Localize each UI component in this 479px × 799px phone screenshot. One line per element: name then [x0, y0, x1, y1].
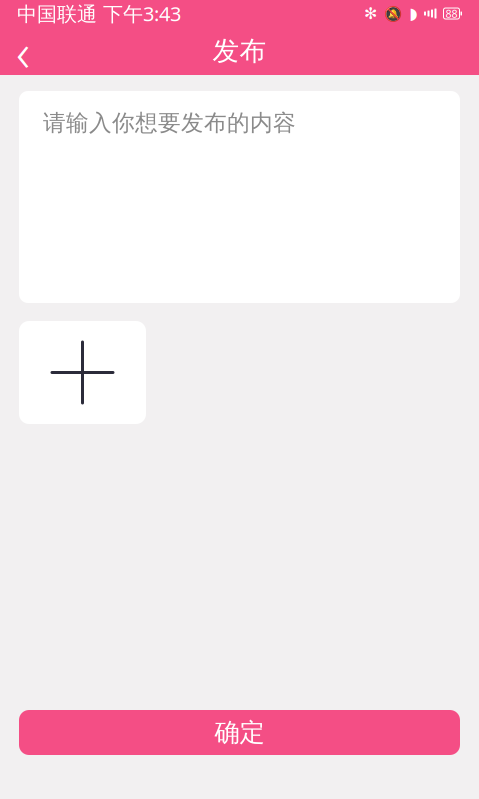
staticText: ✻ — [364, 4, 377, 23]
staticText: 确定 — [214, 717, 264, 748]
staticText: 请输入你想要发布的内容 — [43, 109, 296, 137]
button[interactable]: 返回 — [0, 27, 46, 75]
staticText: 中国联通 下午3:43 — [17, 0, 181, 27]
staticText: 发布 — [212, 35, 266, 67]
staticText: 88 — [445, 6, 457, 21]
button[interactable]: 确定 — [19, 710, 460, 755]
staticText: ‹ — [16, 16, 30, 86]
button[interactable]: 请输入你想要发布的内容 — [19, 91, 460, 303]
button[interactable]: 添加图片 — [19, 321, 146, 424]
staticText: ◗ — [409, 4, 417, 23]
staticText: 🔕 — [384, 5, 402, 22]
